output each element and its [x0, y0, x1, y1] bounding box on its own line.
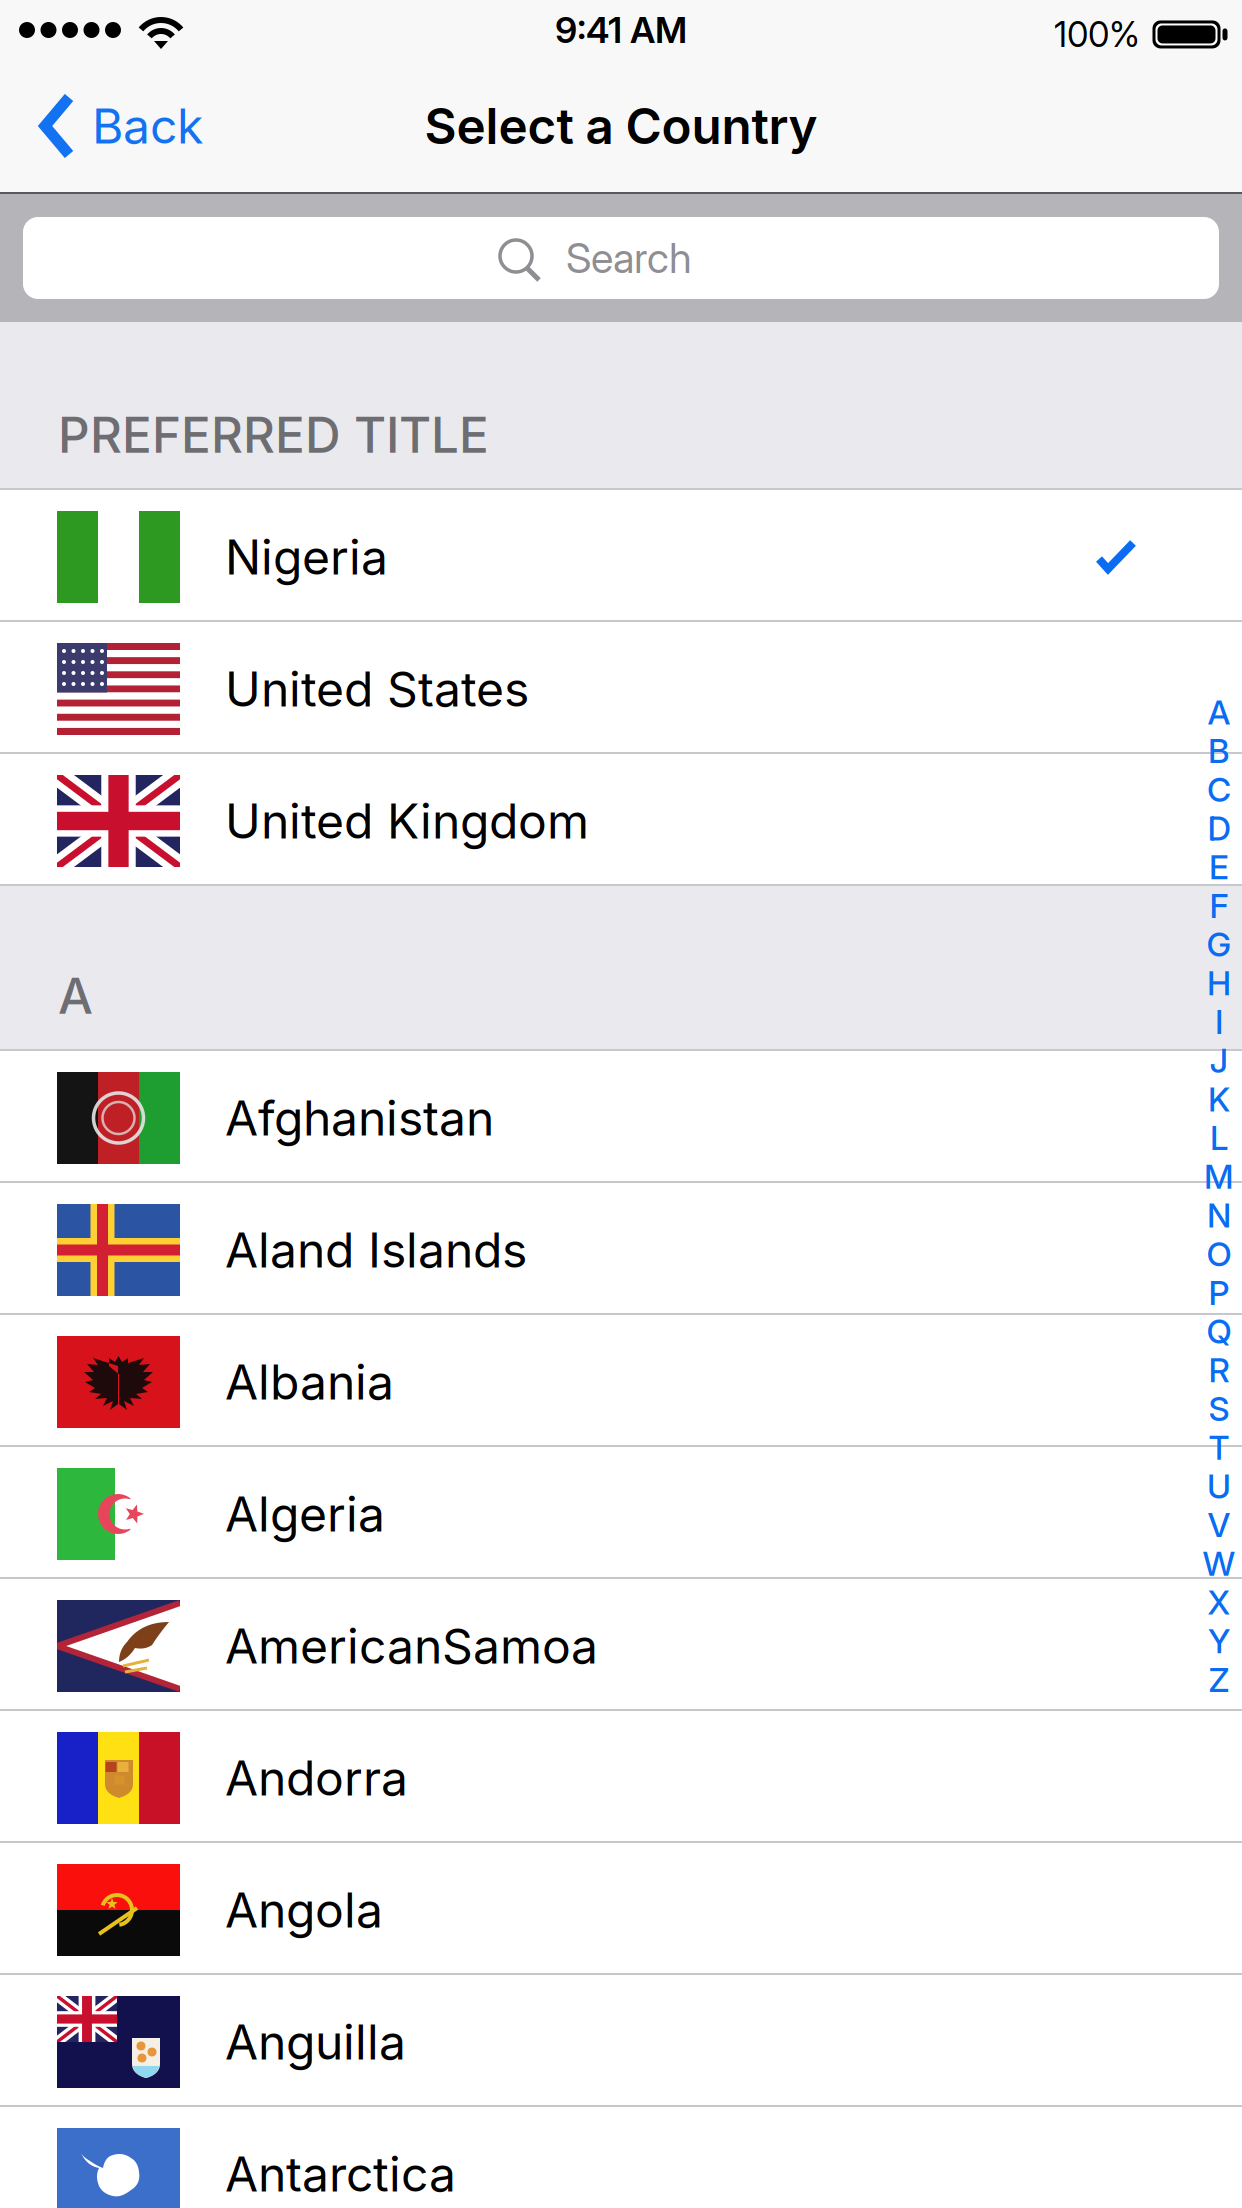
staticText: W	[1202, 1544, 1235, 1583]
staticText: V	[1207, 1505, 1230, 1545]
staticText: T	[1208, 1428, 1229, 1467]
staticText: H	[1207, 963, 1231, 1003]
staticText: M	[1204, 1157, 1234, 1196]
staticText: Y	[1208, 1621, 1230, 1661]
button[interactable]: Aland Islands	[0, 1183, 1242, 1315]
staticText: Z	[1208, 1660, 1229, 1699]
staticText: Search	[566, 234, 692, 282]
button[interactable]: United Kingdom	[0, 754, 1242, 886]
staticText: E	[1209, 847, 1229, 887]
button[interactable]: Back	[0, 95, 203, 156]
staticText: F	[1209, 886, 1228, 925]
staticText: P	[1208, 1273, 1229, 1312]
button[interactable]: Search	[23, 217, 1219, 299]
button[interactable]: Afghanistan	[0, 1051, 1242, 1183]
staticText: L	[1210, 1118, 1228, 1158]
staticText: Aland Islands	[225, 1222, 527, 1278]
staticText: Algeria	[225, 1486, 385, 1542]
staticText: I	[1215, 1002, 1223, 1041]
button[interactable]: Algeria	[0, 1447, 1242, 1579]
staticText: S	[1208, 1389, 1229, 1428]
staticText: X	[1207, 1583, 1230, 1622]
button[interactable]: Angola	[0, 1843, 1242, 1975]
staticText: Andorra	[225, 1750, 408, 1806]
staticText: United Kingdom	[225, 793, 589, 849]
staticText: Q	[1206, 1312, 1231, 1351]
staticText: J	[1209, 1041, 1228, 1080]
staticText: A	[1207, 693, 1230, 732]
staticText: PREFERRED TITLE	[58, 406, 489, 464]
button[interactable]: Section index	[1202, 693, 1235, 1699]
staticText: Antarctica	[225, 2146, 456, 2202]
staticText: 9:41 AM	[555, 9, 687, 51]
staticText: N	[1207, 1196, 1231, 1235]
staticText: O	[1206, 1234, 1231, 1274]
button[interactable]: Nigeria	[0, 490, 1242, 622]
button[interactable]: Albania	[0, 1315, 1242, 1447]
staticText: United States	[225, 661, 529, 717]
staticText: A	[58, 967, 93, 1025]
button[interactable]: AmericanSamoa	[0, 1579, 1242, 1711]
staticText: Albania	[225, 1354, 394, 1410]
button[interactable]: Andorra	[0, 1711, 1242, 1843]
staticText: Nigeria	[225, 529, 388, 585]
staticText: Back	[92, 98, 203, 154]
staticText: Afghanistan	[225, 1090, 494, 1146]
staticText: R	[1208, 1350, 1229, 1390]
staticText: 100%	[1054, 14, 1140, 55]
button[interactable]: United States	[0, 622, 1242, 754]
button[interactable]: Antarctica	[0, 2107, 1242, 2208]
staticText: Angola	[225, 1882, 383, 1938]
button[interactable]: Anguilla	[0, 1975, 1242, 2107]
staticText: Anguilla	[225, 2014, 406, 2070]
staticText: D	[1207, 809, 1230, 848]
staticText: K	[1208, 1080, 1230, 1119]
staticText: Select a Country	[424, 97, 817, 155]
staticText: C	[1207, 770, 1231, 809]
staticText: G	[1206, 925, 1231, 964]
staticText: AmericanSamoa	[225, 1618, 598, 1674]
staticText: B	[1208, 731, 1230, 771]
staticText: U	[1207, 1467, 1231, 1506]
